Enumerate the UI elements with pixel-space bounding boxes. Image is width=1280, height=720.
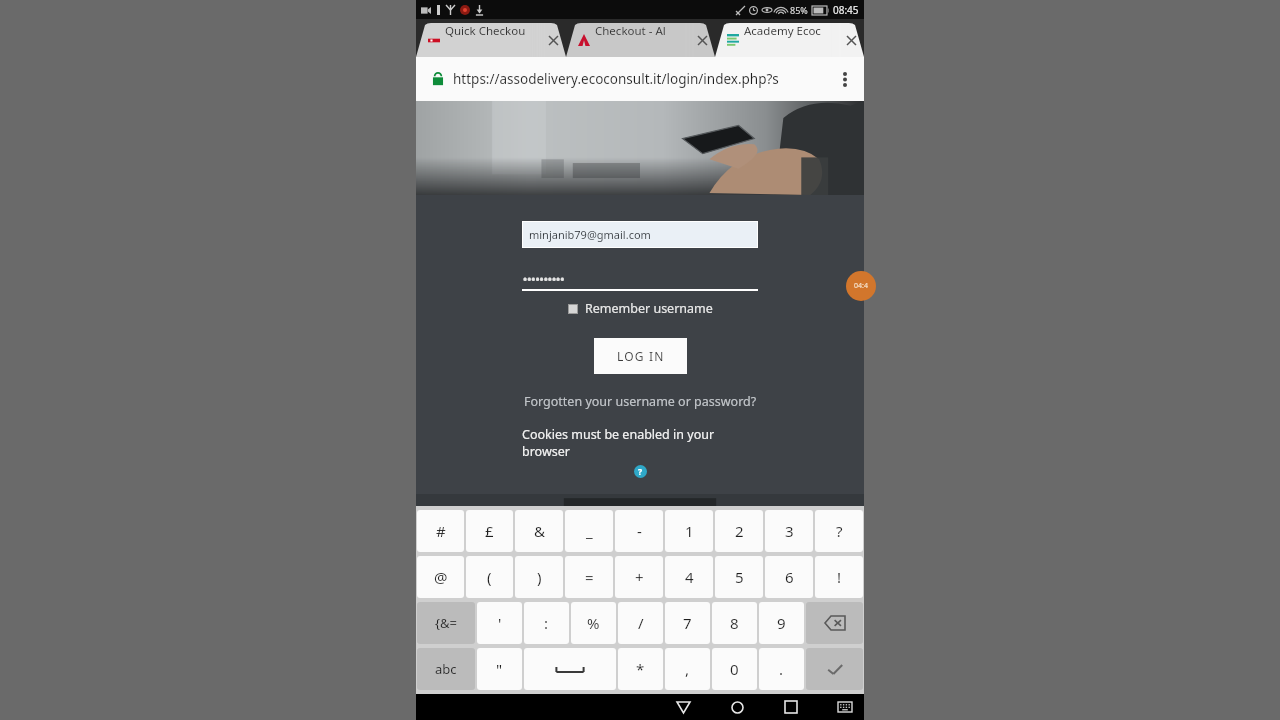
button[interactable]: Hide keyboard	[832, 694, 858, 720]
staticText: Checkout - Al	[595, 23, 666, 39]
staticText: '	[498, 613, 502, 633]
staticText: 8	[730, 613, 739, 633]
button[interactable]: @	[417, 556, 464, 598]
button[interactable]: :	[524, 602, 569, 644]
staticText: *	[636, 659, 645, 679]
button[interactable]: .	[759, 648, 804, 690]
button[interactable]: Academy Ecoc	[715, 23, 864, 57]
staticText: 1	[685, 521, 694, 541]
staticText: /	[638, 613, 644, 633]
button[interactable]: ••••••••••	[522, 265, 758, 291]
button[interactable]: (	[466, 556, 513, 598]
button[interactable]: 2	[715, 510, 763, 552]
button[interactable]: +	[615, 556, 663, 598]
staticText: &	[534, 521, 545, 541]
staticText: :	[544, 613, 549, 633]
staticText: -	[637, 521, 642, 541]
button[interactable]: Close tab	[545, 32, 561, 48]
button[interactable]: 0	[712, 648, 757, 690]
staticText: (	[487, 567, 492, 587]
button[interactable]: Quick Checkou	[416, 23, 566, 57]
button[interactable]: Checkout - Al	[566, 23, 715, 57]
button[interactable]: ,	[665, 648, 710, 690]
button[interactable]: Remember username	[568, 300, 713, 317]
button[interactable]: 9	[759, 602, 804, 644]
staticText: minjanib79@gmail.com	[529, 227, 651, 242]
button[interactable]: Timer badge	[846, 271, 876, 301]
button[interactable]: "	[477, 648, 522, 690]
staticText: 6	[785, 567, 794, 587]
button[interactable]: 3	[765, 510, 813, 552]
button[interactable]: Recents	[778, 694, 804, 720]
button[interactable]: Back	[670, 694, 696, 720]
staticText: 85%	[790, 4, 808, 16]
staticText: !	[837, 567, 842, 587]
staticText: Academy Ecoc	[744, 23, 821, 39]
button[interactable]: minjanib79@gmail.com	[522, 221, 758, 248]
staticText: {&=	[435, 614, 457, 632]
button[interactable]: https://assodelivery.ecoconsult.it/login…	[416, 57, 864, 101]
button[interactable]: Close tab	[843, 32, 859, 48]
staticText: abc	[435, 660, 457, 678]
staticText: Remember username	[585, 300, 713, 317]
staticText: 04:4	[854, 281, 868, 291]
button[interactable]: '	[477, 602, 522, 644]
staticText: 4	[685, 567, 694, 587]
staticText: ?	[638, 466, 643, 478]
staticText: ••••••••••	[523, 271, 565, 286]
staticText: https://assodelivery.ecoconsult.it/login…	[453, 70, 832, 88]
button[interactable]: 7	[665, 602, 710, 644]
button[interactable]: Enter	[806, 648, 863, 690]
staticText: Quick Checkou	[445, 23, 526, 39]
button[interactable]: Backspace	[806, 602, 863, 644]
staticText: )	[537, 567, 542, 587]
staticText: 5	[735, 567, 744, 587]
staticText: 08:45	[833, 3, 859, 17]
staticText: Cookies must be enabled in your browser	[522, 426, 758, 460]
staticText: #	[436, 521, 446, 541]
button[interactable]: =	[565, 556, 613, 598]
button[interactable]: 4	[665, 556, 713, 598]
staticText: %	[587, 613, 600, 633]
staticText: .	[779, 659, 784, 679]
staticText: 2	[735, 521, 744, 541]
button[interactable]: Help	[634, 465, 647, 478]
staticText: £	[485, 521, 494, 541]
button[interactable]: &	[515, 510, 563, 552]
button[interactable]: )	[515, 556, 563, 598]
button[interactable]: -	[615, 510, 663, 552]
button[interactable]: 5	[715, 556, 763, 598]
staticText: "	[496, 659, 503, 679]
staticText: 7	[683, 613, 692, 633]
button[interactable]: LOG IN	[594, 338, 687, 374]
button[interactable]: {&=	[417, 602, 475, 644]
button[interactable]: /	[618, 602, 663, 644]
button[interactable]: 6	[765, 556, 813, 598]
staticText: 9	[777, 613, 786, 633]
staticText: ?	[836, 521, 843, 541]
button[interactable]: _	[565, 510, 613, 552]
staticText: LOG IN	[617, 348, 665, 364]
staticText: _	[586, 521, 593, 541]
button[interactable]: Forgotten your username or password?	[524, 393, 757, 410]
button[interactable]: 8	[712, 602, 757, 644]
button[interactable]: !	[815, 556, 863, 598]
staticText: +	[635, 567, 644, 587]
staticText: @	[434, 567, 448, 587]
staticText: ,	[685, 659, 690, 679]
button[interactable]: %	[571, 602, 616, 644]
button[interactable]: More options	[832, 66, 858, 92]
staticText: 3	[785, 521, 794, 541]
button[interactable]: #	[417, 510, 464, 552]
button[interactable]: Space	[524, 648, 616, 690]
staticText: Forgotten your username or password?	[524, 393, 757, 410]
button[interactable]: Home	[724, 694, 750, 720]
staticText: =	[585, 567, 594, 587]
button[interactable]: Close tab	[694, 32, 710, 48]
staticText: 0	[730, 659, 739, 679]
button[interactable]: abc	[417, 648, 475, 690]
button[interactable]: ?	[815, 510, 863, 552]
button[interactable]: *	[618, 648, 663, 690]
button[interactable]: 1	[665, 510, 713, 552]
button[interactable]: £	[466, 510, 513, 552]
